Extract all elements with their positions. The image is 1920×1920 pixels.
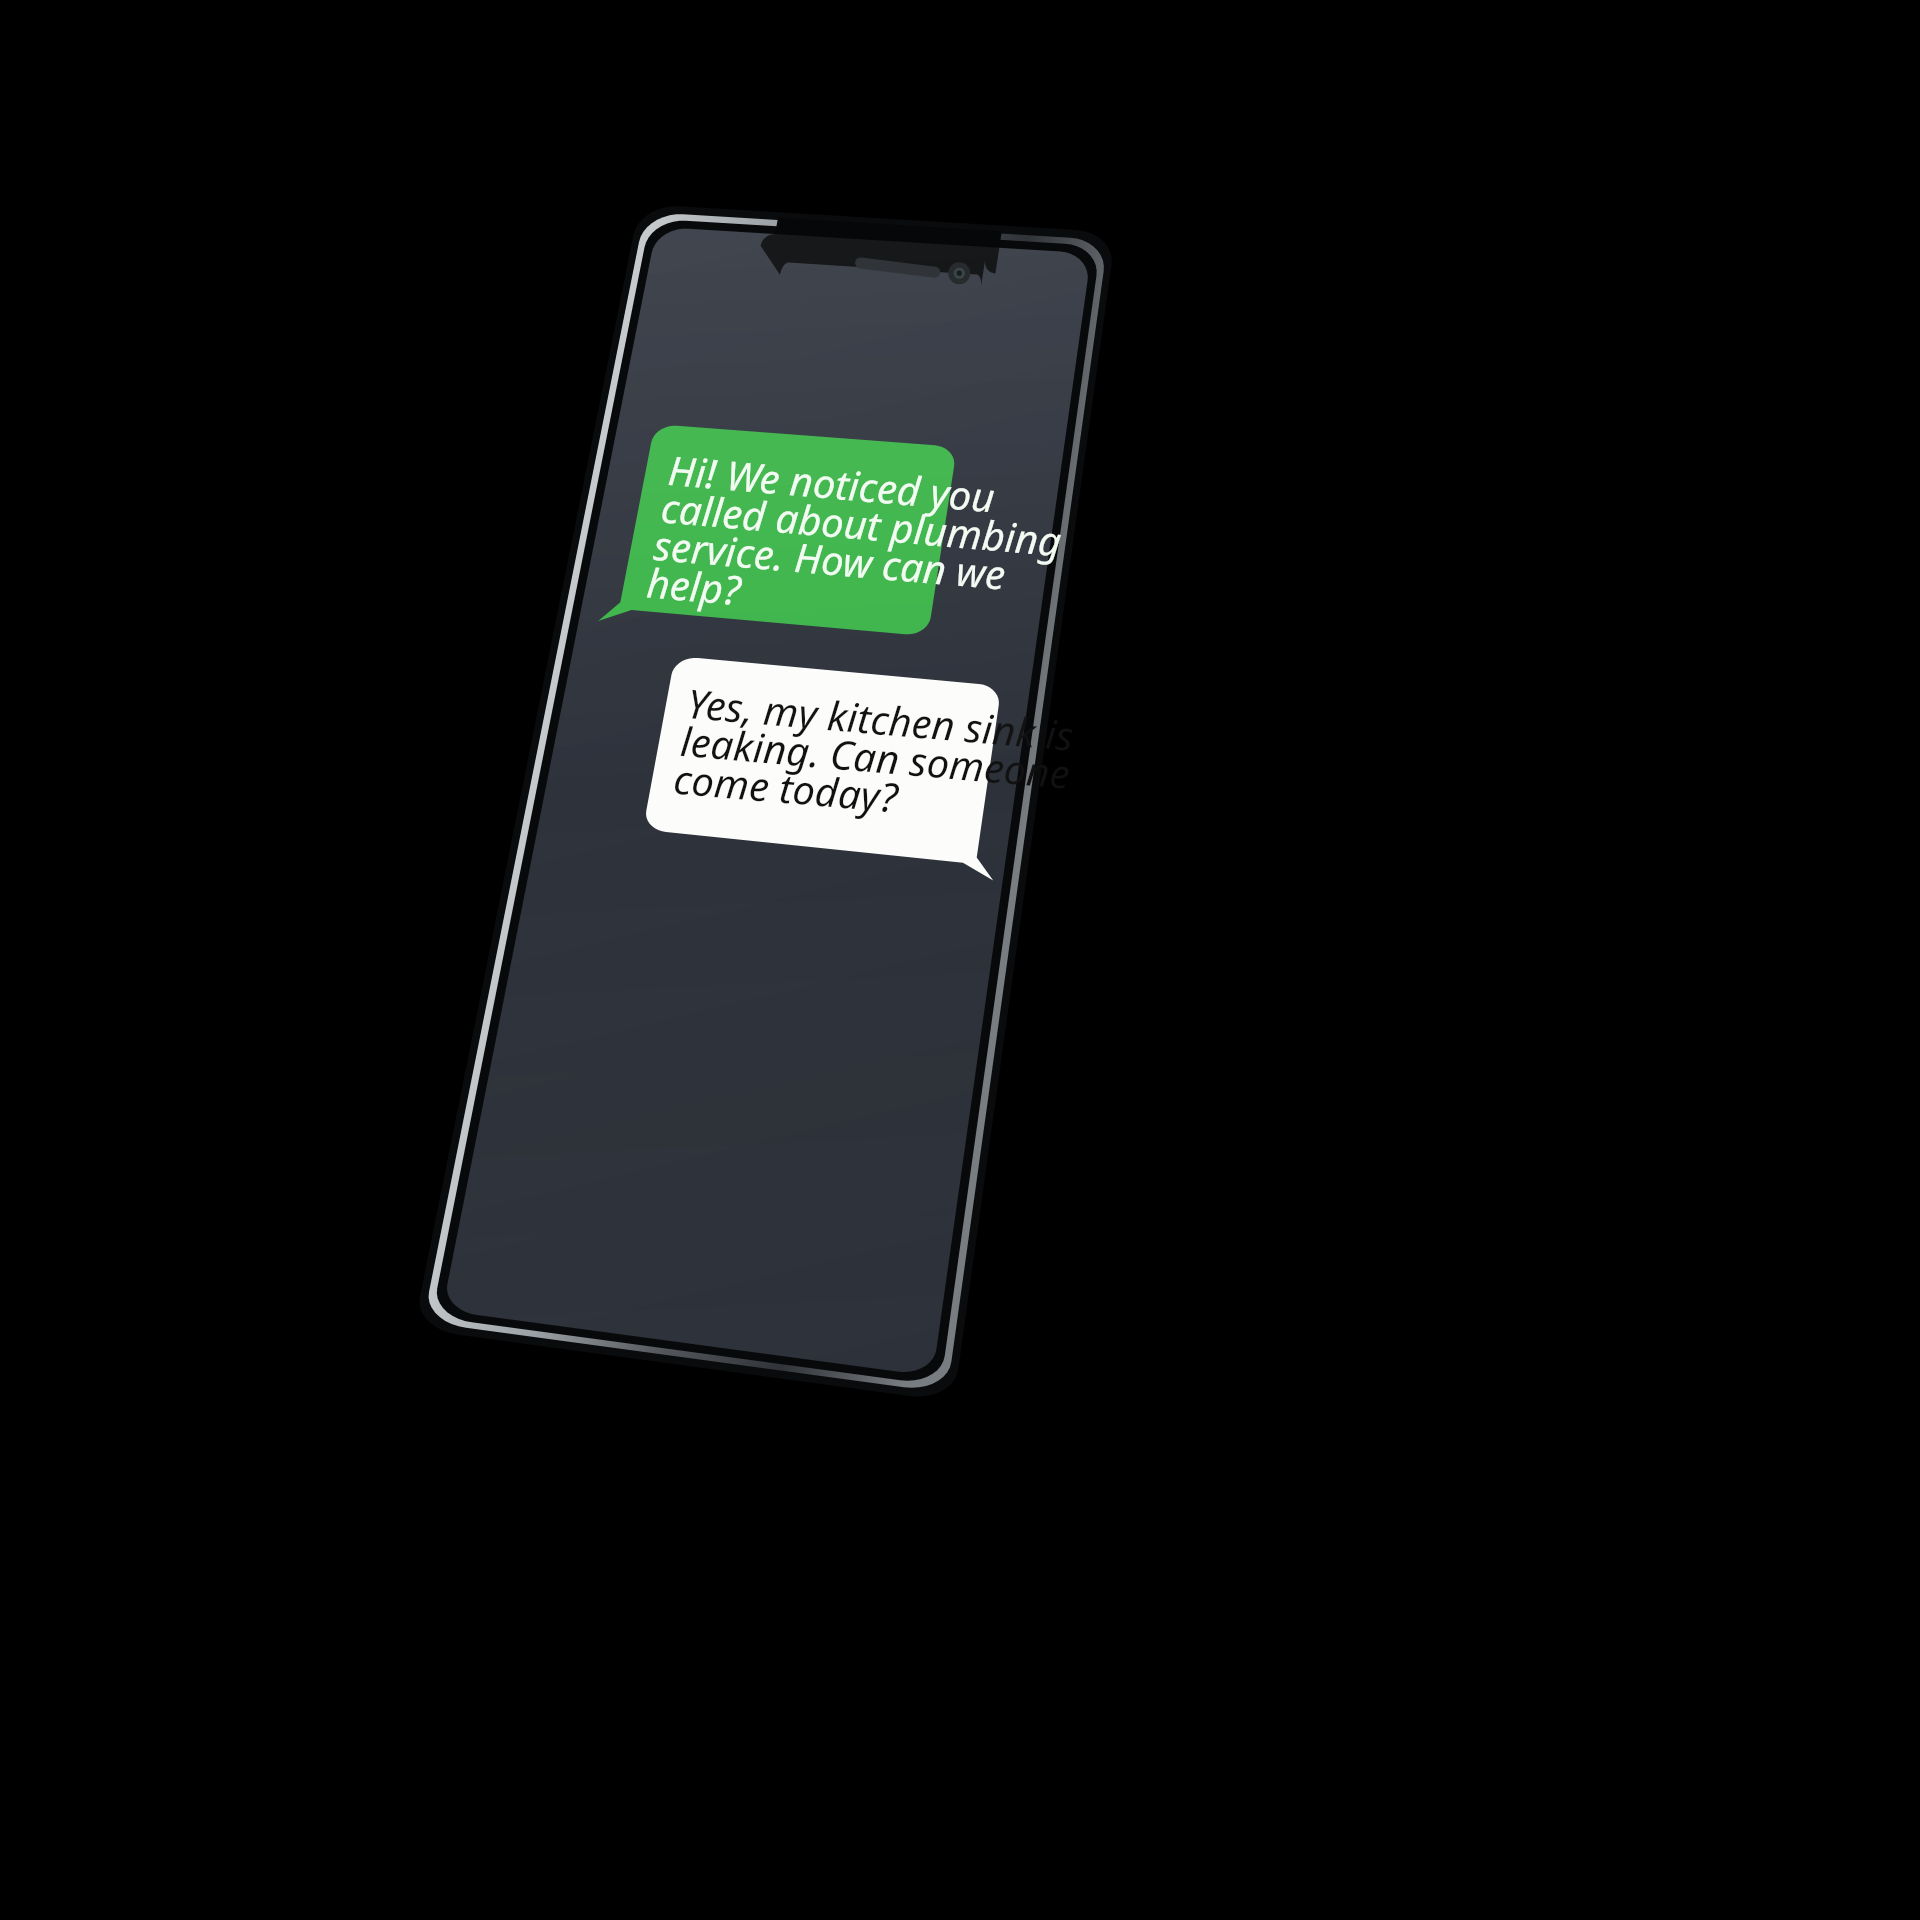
- button[interactable]: Text message conversation shown on a pho…: [0, 0, 1920, 1920]
